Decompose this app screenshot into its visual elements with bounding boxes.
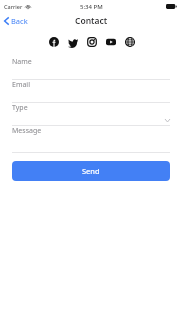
button[interactable]: Website — [123, 35, 136, 48]
staticText: Send — [82, 166, 100, 176]
staticText: Contact — [75, 15, 108, 27]
staticText: Message — [12, 126, 42, 136]
staticText: Carrier — [4, 3, 23, 10]
staticText: Back — [11, 16, 28, 26]
button[interactable]: Twitter — [66, 35, 79, 48]
button[interactable]: Send — [12, 161, 170, 181]
button[interactable]: Instagram — [85, 35, 98, 48]
button[interactable]: YouTube — [104, 35, 117, 48]
button[interactable]: Facebook — [47, 35, 60, 48]
button[interactable]: Message — [0, 126, 182, 153]
button[interactable]: Name — [0, 57, 182, 80]
button[interactable]: Email — [0, 80, 182, 103]
staticText: Type — [12, 103, 28, 113]
staticText: Email — [12, 80, 30, 90]
button[interactable]: Type — [0, 103, 182, 126]
staticText: 5:34 PM — [80, 3, 103, 11]
button[interactable]: Back — [0, 14, 34, 28]
staticText: Name — [12, 57, 32, 67]
